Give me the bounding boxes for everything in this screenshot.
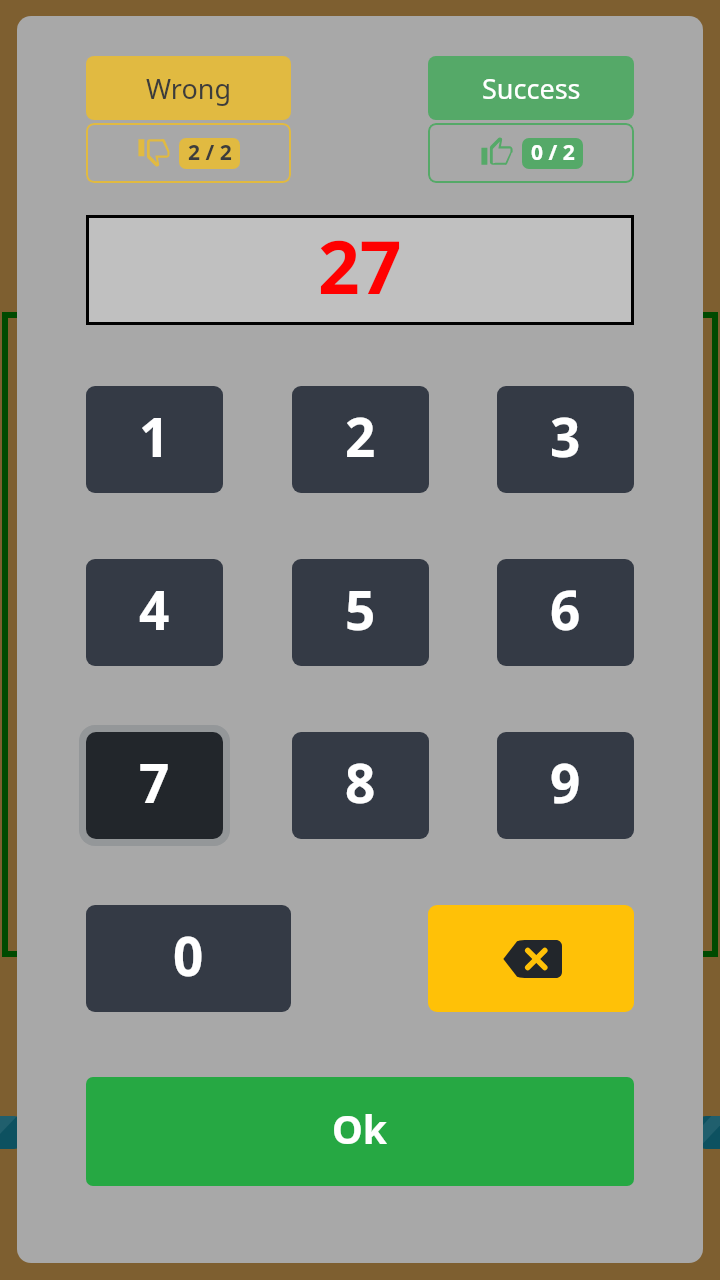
staticText: 2 [345, 400, 376, 472]
staticText: 3 [550, 400, 581, 472]
button[interactable]: 2 / 2 [86, 123, 291, 183]
button[interactable]: Success [428, 56, 634, 120]
staticText: 1 [139, 400, 170, 472]
staticText: 0 / 2 [531, 138, 575, 167]
button[interactable]: 0 / 2 [428, 123, 634, 183]
button[interactable]: Wrong [86, 56, 291, 120]
staticText: Success [482, 70, 581, 107]
staticText: 8 [345, 746, 376, 818]
staticText: 5 [345, 573, 376, 645]
button[interactable]: Backspace [428, 905, 634, 1012]
staticText: Wrong [146, 70, 232, 107]
staticText: 7 [139, 746, 170, 818]
button[interactable]: Ok [86, 1077, 634, 1186]
staticText: 9 [550, 746, 581, 818]
staticText: Ok [332, 1102, 388, 1155]
button[interactable]: 9 [497, 732, 634, 839]
button[interactable]: 2 [292, 386, 429, 493]
staticText: 6 [550, 573, 581, 645]
button[interactable]: 5 [292, 559, 429, 666]
button[interactable]: 3 [497, 386, 634, 493]
button[interactable]: 1 [86, 386, 223, 493]
button[interactable]: 6 [497, 559, 634, 666]
staticText: 27 [318, 216, 402, 315]
button[interactable]: 0 [86, 905, 291, 1012]
button[interactable]: 7 [79, 725, 230, 846]
staticText: 4 [139, 573, 170, 645]
staticText: 0 [173, 919, 204, 991]
staticText: 2 / 2 [188, 138, 232, 167]
button[interactable]: 4 [86, 559, 223, 666]
button[interactable]: 8 [292, 732, 429, 839]
